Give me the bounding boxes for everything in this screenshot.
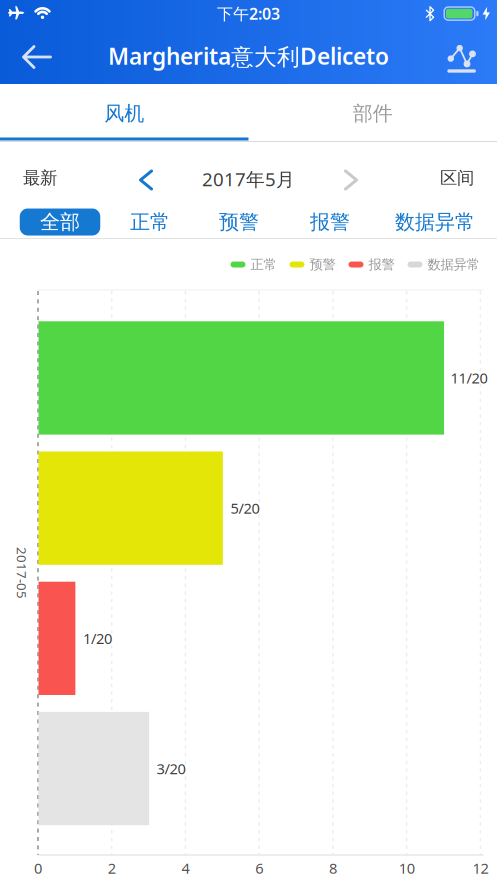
button[interactable]: Back [23,46,50,67]
staticText: 0 [34,858,42,878]
staticText: 预警 [219,210,259,234]
staticText: 数据异常 [427,256,479,273]
button[interactable]: 预警 [289,256,335,273]
button[interactable]: 预警 [219,210,259,234]
button[interactable]: 数据异常 [395,210,475,234]
staticText: 12 [472,858,488,878]
staticText: 部件 [353,101,393,126]
staticText: 正常 [250,256,276,273]
staticText: 风机 [104,101,144,126]
staticText: 8 [329,858,337,878]
staticText: 10 [399,858,415,878]
button[interactable]: Previous month [140,171,151,189]
button[interactable]: 2017年5月 [202,167,295,191]
staticText: 最新 [23,167,57,189]
staticText: 3/20 [156,759,185,778]
button[interactable]: 区间 [440,167,474,189]
staticText: 2017年5月 [202,167,295,191]
staticText: 全部 [40,210,80,234]
staticText: 预警 [309,256,335,273]
staticText: Margherita意大利Deliceto [108,41,389,71]
staticText: 4 [181,858,189,878]
button[interactable]: Next month [345,171,356,189]
button[interactable]: 报警 [348,256,394,273]
button[interactable]: 全部 [20,208,100,235]
button[interactable]: 最新 [23,167,57,189]
staticText: 6 [255,858,263,878]
staticText: 1/20 [83,629,112,648]
button[interactable]: Chart [444,39,480,73]
staticText: 区间 [440,167,474,189]
staticText: 5/20 [230,498,259,518]
staticText: 报警 [310,210,350,234]
button[interactable]: 数据异常 [407,256,479,273]
button[interactable]: 风机 [0,87,248,140]
staticText: 数据异常 [395,210,475,234]
button[interactable]: 正常 [230,256,276,273]
staticText: 11/20 [450,368,487,388]
staticText: 报警 [368,256,394,273]
staticText: 下午2:03 [217,3,280,24]
button[interactable]: 报警 [310,210,350,234]
button[interactable]: 正常 [130,210,170,234]
button[interactable]: 部件 [249,87,497,140]
staticText: 2017-05 [0,564,48,582]
staticText: 2 [108,858,116,878]
staticText: 正常 [130,210,170,234]
